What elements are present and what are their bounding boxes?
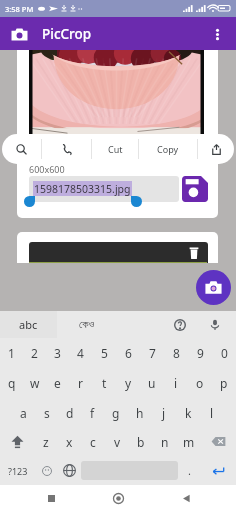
button[interactable]: 0 bbox=[212, 338, 236, 368]
button[interactable]: f bbox=[81, 398, 104, 427]
staticText: h bbox=[136, 405, 144, 421]
button[interactable]: w bbox=[23, 368, 46, 398]
button[interactable]: 7 bbox=[140, 338, 164, 368]
button[interactable]: e bbox=[46, 368, 69, 398]
staticText: 7 bbox=[149, 345, 156, 361]
button[interactable]: i bbox=[164, 368, 188, 398]
staticText: Cut bbox=[108, 143, 123, 155]
button[interactable]: Share bbox=[198, 134, 234, 164]
staticText: 4 bbox=[77, 345, 84, 361]
staticText: q bbox=[8, 375, 16, 391]
staticText: o bbox=[196, 375, 204, 391]
button[interactable]: v bbox=[105, 427, 129, 456]
staticText: x bbox=[66, 434, 73, 450]
button[interactable]: Back bbox=[169, 485, 203, 512]
button[interactable]: q bbox=[0, 368, 23, 398]
button[interactable]: Call bbox=[42, 134, 91, 164]
staticText: a bbox=[20, 405, 27, 421]
staticText: . bbox=[188, 463, 191, 478]
button[interactable]: Search bbox=[2, 134, 41, 164]
button[interactable]: x bbox=[57, 427, 81, 456]
button[interactable]: g bbox=[104, 398, 128, 427]
staticText: 9 bbox=[197, 345, 204, 361]
staticText: y bbox=[125, 375, 132, 391]
button[interactable]: Enter bbox=[201, 456, 236, 485]
staticText: t bbox=[102, 375, 107, 391]
staticText: w bbox=[30, 375, 40, 391]
staticText: m bbox=[183, 434, 195, 450]
button[interactable]: d bbox=[58, 398, 81, 427]
button[interactable]: abc bbox=[0, 311, 57, 338]
button[interactable]: 8 bbox=[164, 338, 188, 368]
staticText: k bbox=[185, 405, 192, 421]
staticText: 600x600 bbox=[29, 163, 65, 175]
staticText: PicCrop bbox=[42, 25, 92, 43]
button[interactable]: 1 bbox=[0, 338, 23, 368]
button[interactable]: Change language bbox=[58, 456, 81, 485]
button[interactable]: s bbox=[35, 398, 58, 427]
button[interactable]: Help bbox=[166, 311, 193, 338]
button[interactable]: b bbox=[129, 427, 153, 456]
button[interactable]: 5 bbox=[92, 338, 116, 368]
button[interactable]: 1598178503315.jpg bbox=[29, 176, 179, 202]
staticText: g bbox=[112, 405, 120, 421]
staticText: j bbox=[162, 405, 166, 421]
button[interactable]: t bbox=[92, 368, 116, 398]
staticText: e bbox=[54, 375, 61, 391]
button[interactable]: j bbox=[152, 398, 176, 427]
staticText: abc bbox=[19, 317, 38, 332]
button[interactable]: o bbox=[188, 368, 212, 398]
button[interactable]: কেও bbox=[57, 311, 116, 338]
button[interactable]: Voice input bbox=[201, 311, 228, 338]
button[interactable]: n bbox=[153, 427, 177, 456]
button[interactable]: More options bbox=[204, 21, 230, 47]
staticText: u bbox=[148, 375, 156, 391]
button[interactable]: h bbox=[128, 398, 152, 427]
button[interactable]: Backspace bbox=[201, 427, 236, 456]
button[interactable]: c bbox=[81, 427, 105, 456]
staticText: z bbox=[43, 434, 49, 450]
staticText: 6 bbox=[125, 345, 132, 361]
staticText: কেও bbox=[79, 319, 95, 330]
button[interactable]: z bbox=[34, 427, 57, 456]
button[interactable]: Save bbox=[181, 175, 209, 203]
button[interactable]: u bbox=[140, 368, 164, 398]
button[interactable]: y bbox=[116, 368, 140, 398]
button[interactable]: 3 bbox=[46, 338, 69, 368]
button[interactable]: 9 bbox=[188, 338, 212, 368]
staticText: 1 bbox=[8, 345, 15, 361]
button[interactable]: Take photo bbox=[196, 270, 231, 305]
button[interactable]: Cut bbox=[92, 134, 138, 164]
staticText: 1598178503315.jpg bbox=[34, 182, 131, 196]
button[interactable]: Copy bbox=[139, 134, 197, 164]
staticText: p bbox=[220, 375, 228, 391]
staticText: 8 bbox=[173, 345, 180, 361]
button[interactable]: Camera bbox=[8, 23, 30, 45]
staticText: 3 bbox=[54, 345, 61, 361]
button[interactable]: . bbox=[178, 456, 201, 485]
button[interactable]: 2 bbox=[23, 338, 46, 368]
staticText: r bbox=[78, 375, 83, 391]
staticText: 3:58 PM bbox=[5, 4, 34, 14]
staticText: 0 bbox=[221, 345, 228, 361]
staticText: i bbox=[174, 375, 178, 391]
button[interactable]: k bbox=[176, 398, 200, 427]
button[interactable]: a bbox=[12, 398, 35, 427]
button[interactable]: m bbox=[177, 427, 201, 456]
button[interactable]: p bbox=[212, 368, 236, 398]
button[interactable]: Recents bbox=[34, 485, 68, 512]
button[interactable]: Shift bbox=[0, 427, 34, 456]
button[interactable]: 4 bbox=[69, 338, 92, 368]
button[interactable]: r bbox=[69, 368, 92, 398]
staticText: d bbox=[66, 405, 74, 421]
button[interactable]: l bbox=[200, 398, 224, 427]
button[interactable]: Emoji bbox=[35, 456, 58, 485]
button[interactable]: 6 bbox=[116, 338, 140, 368]
button[interactable]: Delete bbox=[184, 243, 204, 263]
staticText: Copy bbox=[157, 143, 179, 155]
button[interactable]: ?123 bbox=[0, 456, 35, 485]
staticText: b bbox=[137, 434, 145, 450]
button[interactable]: Home bbox=[101, 485, 135, 512]
staticText: 5 bbox=[101, 345, 108, 361]
